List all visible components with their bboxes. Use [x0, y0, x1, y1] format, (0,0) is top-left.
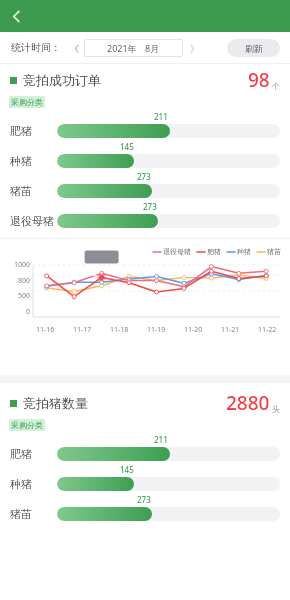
staticText: 统计时间：: [11, 41, 61, 54]
staticText: 竞拍猪数量: [23, 395, 88, 411]
staticText: 211: [154, 111, 168, 122]
staticText: 145: [120, 464, 134, 475]
staticText: 11-16: [36, 325, 55, 335]
button[interactable]: 肥猪: [197, 247, 221, 256]
staticText: 肥猪: [10, 447, 32, 461]
staticText: 11-22: [258, 325, 277, 335]
button[interactable]: 145: [0, 464, 290, 494]
button[interactable]: 273: [0, 201, 290, 231]
staticText: 145: [120, 141, 134, 152]
staticText: 猪苗: [10, 184, 32, 198]
button[interactable]: Back: [0, 0, 32, 32]
staticText: 1000: [14, 260, 31, 270]
staticText: 肥猪: [10, 124, 32, 138]
staticText: 猪苗: [10, 507, 32, 521]
staticText: 种猪: [10, 154, 32, 168]
staticText: 273: [137, 494, 151, 505]
staticText: 11-19: [147, 325, 166, 335]
staticText: 11-21: [221, 325, 240, 335]
button[interactable]: Next period: [186, 40, 202, 56]
staticText: 0: [26, 307, 31, 317]
staticText: 98: [248, 67, 270, 93]
staticText: 退役母猪: [10, 214, 54, 228]
staticText: 》: [190, 43, 199, 54]
staticText: 竞拍成功订单: [23, 72, 101, 88]
button[interactable]: 145: [0, 141, 290, 171]
staticText: 采购分类: [11, 420, 43, 430]
button[interactable]: 211: [0, 111, 290, 141]
staticText: 肥猪: [207, 247, 221, 256]
button[interactable]: Previous period: [66, 40, 82, 56]
staticText: 种猪: [10, 477, 32, 491]
button[interactable]: 211: [0, 434, 290, 464]
button[interactable]: 273: [0, 494, 290, 524]
staticText: 800: [18, 276, 31, 286]
staticText: 个: [272, 81, 280, 91]
staticText: 《: [70, 43, 79, 54]
button[interactable]: 竞拍成功订单: [0, 67, 290, 93]
staticText: 500: [18, 291, 31, 301]
staticText: 2880: [226, 390, 270, 416]
staticText: 退役母猪: [163, 247, 191, 256]
button[interactable]: 种猪: [227, 247, 251, 256]
staticText: 种猪: [237, 247, 251, 256]
staticText: 刷新: [245, 43, 263, 54]
staticText: 11-18: [110, 325, 129, 335]
staticText: 11-17: [73, 325, 92, 335]
staticText: 8月: [145, 42, 160, 54]
staticText: 211: [154, 434, 168, 445]
button[interactable]: 退役母猪: [153, 247, 191, 256]
button[interactable]: 刷新: [227, 39, 280, 57]
button[interactable]: 2021年: [84, 39, 183, 57]
staticText: 猪苗: [267, 247, 281, 256]
staticText: 2021年: [107, 42, 137, 54]
button[interactable]: 猪苗: [257, 247, 281, 256]
staticText: 采购分类: [11, 97, 43, 107]
staticText: 273: [137, 171, 151, 182]
button[interactable]: 竞拍猪数量: [0, 390, 290, 416]
button[interactable]: 273: [0, 171, 290, 201]
staticText: 273: [143, 201, 157, 212]
staticText: 4282: [81, 269, 98, 279]
staticText: 11-20: [184, 325, 203, 335]
staticText: 头: [272, 404, 280, 414]
